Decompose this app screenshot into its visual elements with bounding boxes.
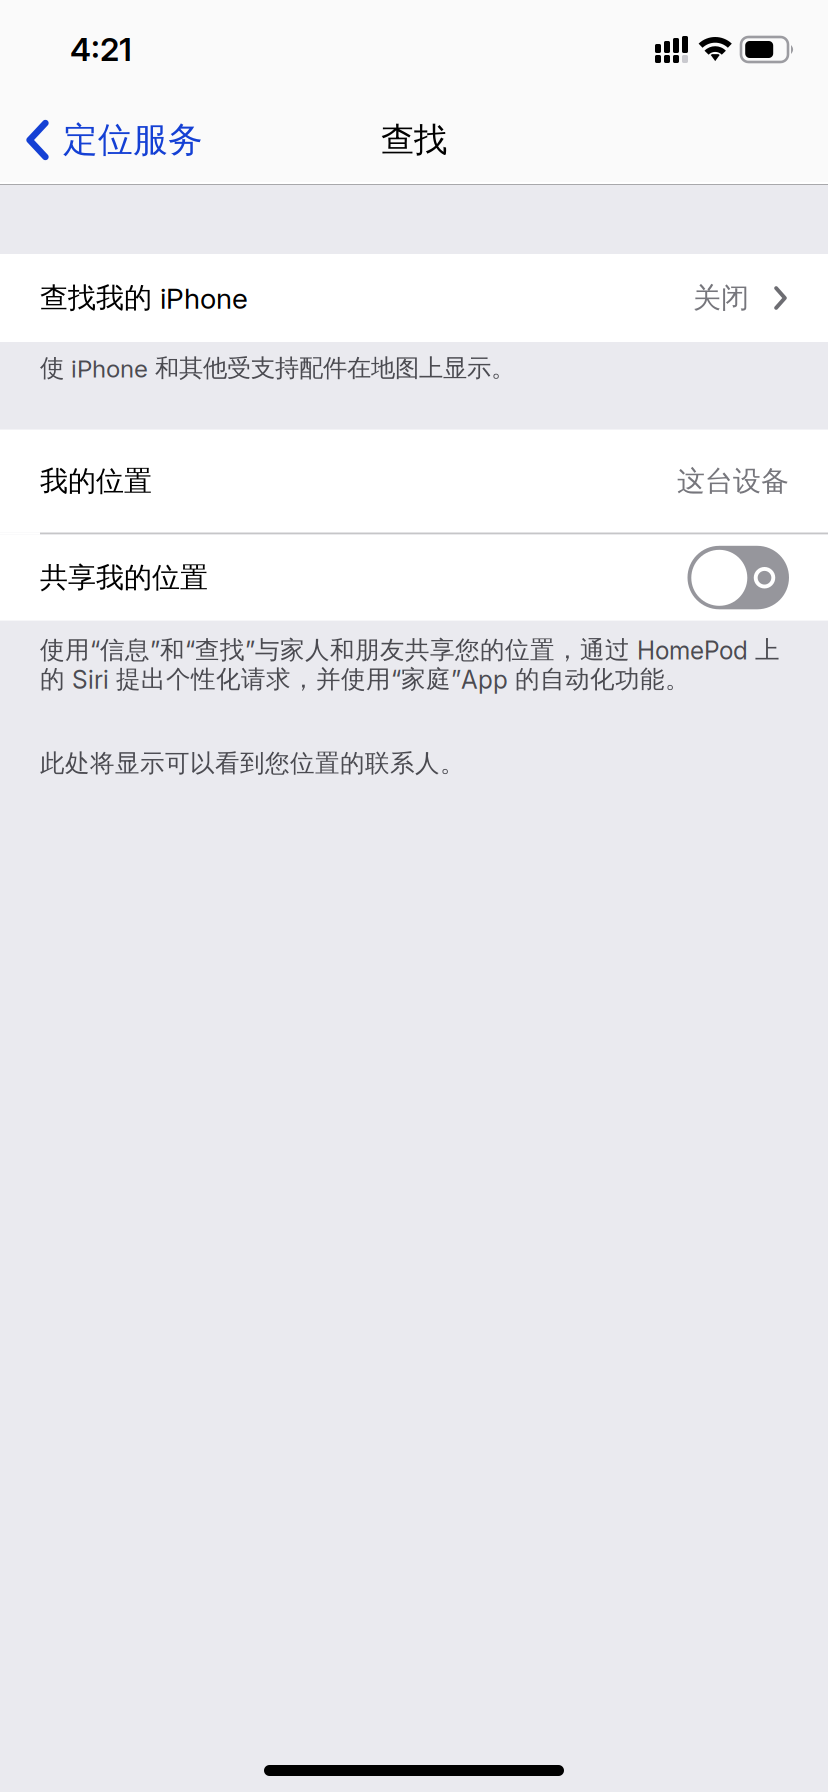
staticText: 共享我的位置 [40, 560, 208, 595]
staticText: 使用“信息”和“查找”与家人和朋友共享您的位置，通过 HomePod 上的 Si… [40, 635, 780, 695]
button[interactable]: 共享我的位置 [0, 535, 828, 621]
button[interactable]: 我的位置 [0, 430, 828, 533]
staticText: 这台设备 [677, 463, 789, 499]
staticText: 定位服务 [63, 118, 203, 162]
staticText: 关闭 [693, 280, 749, 316]
staticText: 此处将显示可以看到您位置的联系人。 [40, 748, 465, 779]
staticText: 4:21 [70, 30, 132, 69]
button[interactable]: 定位服务 [0, 96, 223, 182]
staticText: 我的位置 [40, 463, 152, 499]
staticText: 查找我的 iPhone [40, 280, 248, 316]
button[interactable]: 查找我的 iPhone [0, 254, 828, 342]
staticText: 使 iPhone 和其他受支持配件在地图上显示。 [40, 353, 515, 384]
staticText: 查找 [381, 119, 447, 161]
